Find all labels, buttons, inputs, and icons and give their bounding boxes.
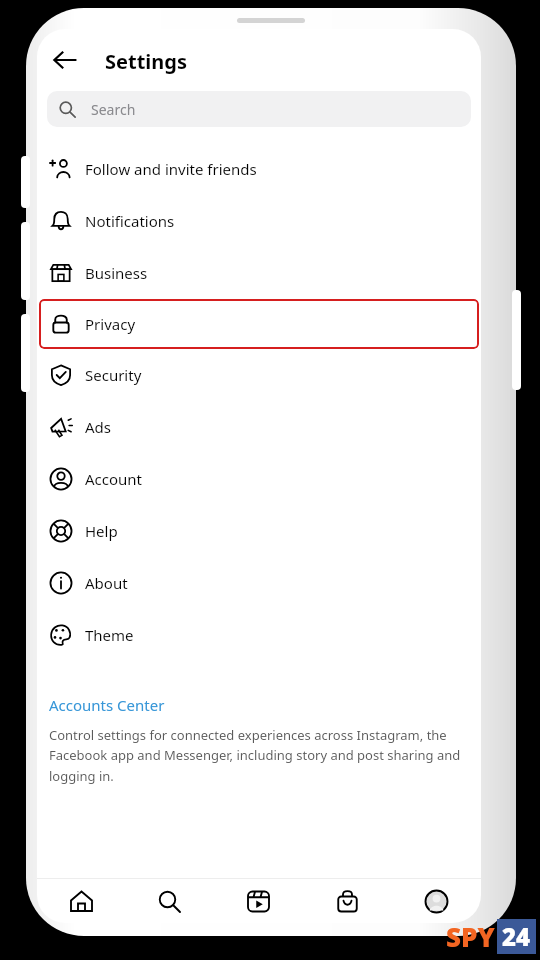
staticText: Control settings for connected experienc… (49, 726, 469, 785)
staticText: About (85, 573, 128, 593)
button[interactable]: Notifications (37, 195, 481, 247)
button[interactable]: Theme (37, 609, 481, 661)
staticText: SPY (446, 919, 495, 954)
button[interactable]: Help (37, 505, 481, 557)
button[interactable]: Security (37, 349, 481, 401)
staticText: Search (91, 100, 136, 119)
button[interactable]: Search (125, 879, 214, 923)
button[interactable]: Ads (37, 401, 481, 453)
staticText: Follow and invite friends (85, 159, 257, 179)
button[interactable]: Reels (214, 879, 303, 923)
button[interactable]: Business (37, 247, 481, 299)
button[interactable]: Back (41, 36, 89, 84)
staticText: Help (85, 521, 118, 541)
button[interactable]: Follow and invite friends (37, 143, 481, 195)
staticText: 24 (502, 920, 531, 953)
button[interactable]: Profile (392, 879, 481, 923)
button[interactable]: About (37, 557, 481, 609)
button[interactable]: Shop (303, 879, 392, 923)
staticText: Security (85, 365, 142, 385)
staticText: Settings (105, 48, 187, 75)
staticText: Ads (85, 417, 111, 437)
button[interactable]: Account (37, 453, 481, 505)
button[interactable]: Home (37, 879, 125, 923)
staticText: Account (85, 469, 143, 489)
staticText: Notifications (85, 211, 175, 231)
staticText: Privacy (85, 314, 136, 334)
button[interactable]: Privacy (39, 299, 479, 349)
staticText: Theme (85, 625, 134, 645)
staticText: Business (85, 263, 148, 283)
button[interactable]: Accounts Center (49, 695, 165, 715)
button[interactable]: Search (47, 91, 471, 127)
